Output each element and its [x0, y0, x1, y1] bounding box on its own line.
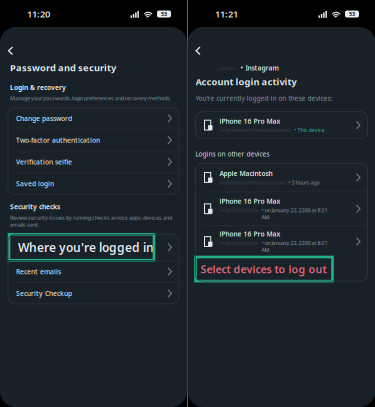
staticText: 11:20	[27, 8, 50, 20]
button[interactable]: Two-factor authentication	[8, 130, 179, 151]
staticText: Where you're logged in	[18, 239, 154, 255]
staticText: iPhone 16 Pro Max	[219, 197, 280, 206]
staticText: Manage your passwords, login preferences…	[10, 95, 171, 102]
button[interactable]: Saved login	[8, 173, 179, 194]
button[interactable]: Back	[191, 42, 204, 59]
staticText: Apple Macintosh	[219, 169, 272, 178]
staticText: Select devices to log out	[200, 262, 326, 276]
staticText: Verification selfie	[16, 157, 72, 166]
staticText: • on January 22, 2200 at 8:21 AM	[261, 239, 327, 254]
staticText: You're currently logged in on these devi…	[195, 94, 332, 103]
staticText: • on January 22, 2200 at 8:21 AM	[261, 207, 327, 221]
staticText: iPhone 16 Pro Max	[219, 229, 280, 238]
staticText: mrbrndnsmthrsxxxxxxxxx	[219, 179, 285, 186]
button[interactable]: Security Checkup	[8, 283, 179, 304]
button[interactable]: Recent emails	[8, 261, 179, 282]
staticText: Security Checkup	[16, 289, 72, 298]
staticText: Saved login	[16, 179, 54, 188]
button[interactable]: iPhone 16 Pro Max	[195, 226, 367, 257]
button[interactable]: iPhone 16 Pro Max	[195, 192, 367, 225]
staticText: mrbrndnsmthrs	[219, 207, 258, 214]
staticText: Account login activity	[195, 75, 296, 88]
staticText: Security checks	[10, 202, 60, 211]
staticText: • This device	[294, 126, 324, 134]
button[interactable]: Back	[4, 42, 16, 59]
staticText: 53	[161, 10, 167, 18]
staticText: Change password	[16, 114, 72, 123]
staticText: Review security issues by running checks…	[10, 214, 172, 228]
staticText: Logins on other devices	[195, 150, 269, 158]
staticText: Two-factor authentication	[16, 136, 100, 145]
staticText: 53	[349, 10, 355, 18]
button[interactable]: Change password	[8, 108, 179, 129]
staticText: Recent emails	[16, 267, 61, 276]
staticText: mrbrndnsmthrsxxxxxxxxxxx	[219, 126, 291, 134]
staticText: • Instagram	[240, 63, 278, 72]
button[interactable]: iPhone 16 Pro Max	[195, 112, 367, 139]
staticText: iPhone 16 Pro Max	[219, 117, 280, 125]
button[interactable]: Verification selfie	[8, 151, 179, 172]
button[interactable]: Select devices to log out	[195, 257, 367, 281]
staticText: 11:21	[215, 8, 238, 20]
staticText: mrbrndnsmthrs	[219, 239, 258, 246]
staticText: Login & recovery	[10, 83, 66, 92]
button[interactable]: Apple Macintosh	[195, 163, 367, 191]
staticText: aaaaaa	[218, 64, 236, 71]
staticText: • 3 hours ago	[288, 179, 319, 186]
button[interactable]: Where you're logged in	[8, 234, 179, 260]
staticText: Password and security	[10, 61, 116, 74]
